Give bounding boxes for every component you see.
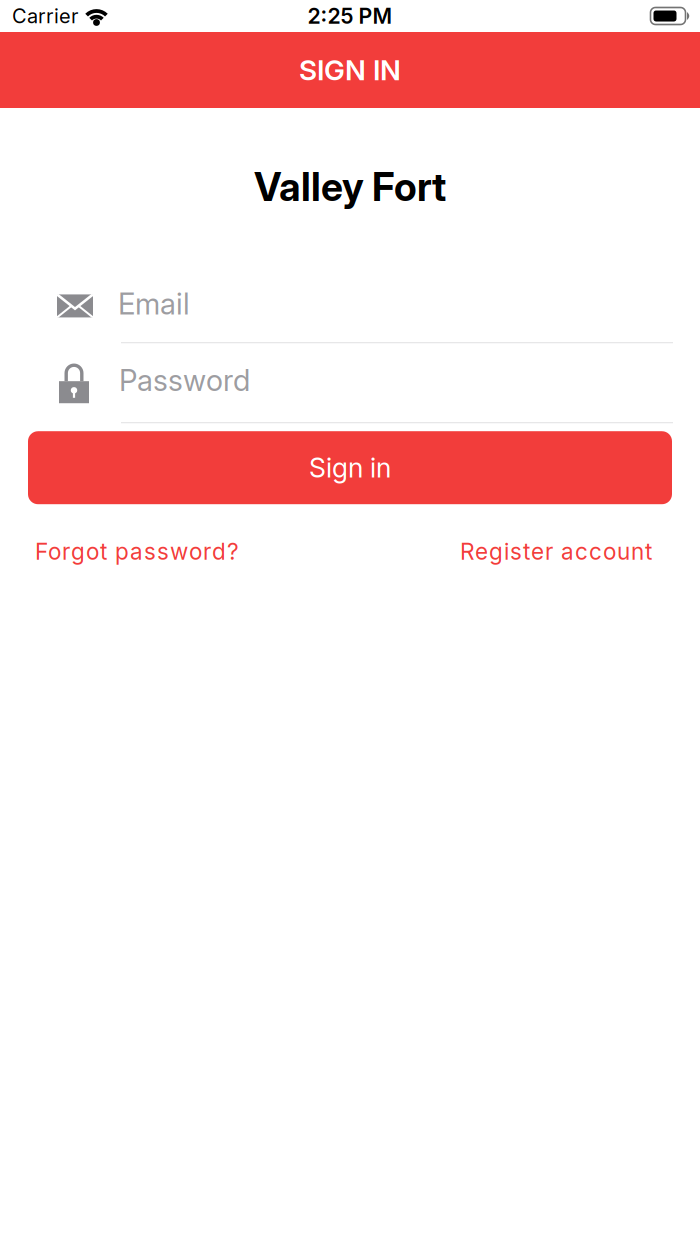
button[interactable]: Sign in <box>28 431 672 504</box>
staticText: SIGN IN <box>299 53 401 86</box>
staticText: Register account <box>460 538 652 565</box>
button[interactable]: Register account <box>460 538 652 565</box>
staticText: Email <box>118 287 190 321</box>
staticText: Carrier <box>12 4 78 28</box>
button[interactable]: Forgot password? <box>35 538 239 565</box>
staticText: Password <box>119 363 250 397</box>
staticText: Sign in <box>309 452 391 483</box>
staticText: 2:25 PM <box>307 3 392 29</box>
button[interactable]: Password <box>0 361 700 423</box>
button[interactable]: Email <box>0 287 700 343</box>
staticText: Valley Fort <box>254 164 446 210</box>
staticText: Forgot password? <box>35 538 239 565</box>
